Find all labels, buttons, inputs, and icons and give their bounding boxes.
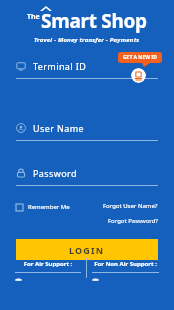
staticText: For Non Air Support : bbox=[92, 260, 159, 268]
staticText: Password bbox=[33, 167, 77, 179]
staticText: Travel - Money transfer - Payments bbox=[34, 36, 140, 44]
staticText: User Name bbox=[33, 122, 85, 134]
staticText: Terminal ID bbox=[33, 60, 87, 72]
staticText: Smart Shop bbox=[41, 8, 147, 34]
button[interactable]: Forgot User Name? bbox=[103, 202, 158, 210]
button[interactable]: GET A NEW ID bbox=[118, 52, 162, 63]
staticText: GET A NEW ID bbox=[123, 54, 157, 61]
staticText: LOGIN bbox=[69, 244, 105, 256]
button[interactable]: Password bbox=[16, 167, 158, 186]
button[interactable]: Scan terminal bbox=[131, 68, 146, 83]
button[interactable]: 1800 108 5400 bbox=[15, 279, 67, 280]
staticText: For Air Support : bbox=[15, 260, 81, 268]
staticText: Remember Me bbox=[28, 203, 70, 211]
button[interactable]: Remember Me bbox=[16, 202, 70, 211]
button[interactable]: LOGIN bbox=[16, 239, 158, 260]
button[interactable]: 1800 108 1080 bbox=[92, 279, 144, 280]
button[interactable]: Forgot Password? bbox=[108, 217, 158, 225]
staticText: The bbox=[27, 12, 40, 22]
button[interactable]: User Name bbox=[16, 122, 158, 141]
button[interactable]: Terminal ID bbox=[16, 60, 158, 79]
